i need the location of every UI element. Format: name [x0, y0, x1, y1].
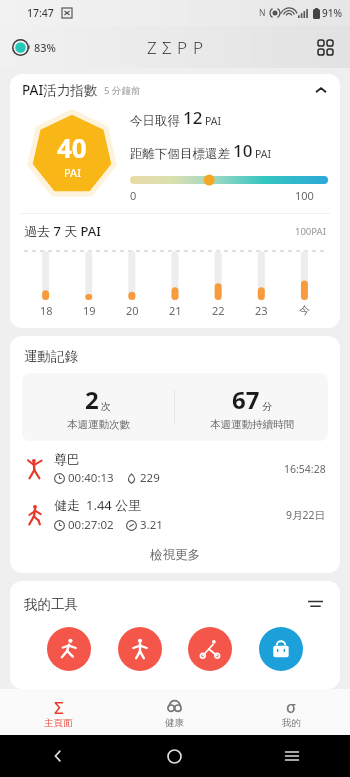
staticText: PAI [64, 165, 81, 180]
button[interactable]: Σ [0, 689, 116, 735]
staticText: 83% [34, 40, 56, 55]
staticText: 過去 7 天 PAI [24, 222, 101, 240]
staticText: 10 [233, 139, 253, 162]
button[interactable]: Apps [312, 34, 338, 60]
staticText: 17:47 [27, 6, 54, 20]
staticText: 健康 [165, 717, 184, 729]
staticText: 我的工具 [24, 596, 78, 613]
staticText: 本週運動次數 [67, 418, 130, 431]
staticText: 5 分鐘前 [104, 84, 141, 97]
staticText: σ [286, 696, 297, 715]
staticText: 21 [169, 303, 182, 318]
staticText: 健走 [54, 497, 80, 513]
staticText: 19 [83, 303, 96, 318]
staticText: Σ [54, 696, 64, 715]
button[interactable]: 檢視更多 [10, 543, 340, 567]
staticText: 我的 [282, 717, 301, 729]
button[interactable]: Edit tools [304, 593, 326, 615]
staticText: 分 [262, 400, 272, 413]
staticText: Σ [162, 36, 172, 59]
staticText: 12 [183, 106, 203, 129]
staticText: 今 [299, 303, 310, 317]
staticText: N [259, 7, 266, 19]
button[interactable]: Tool 2 [188, 627, 232, 671]
staticText: 1.44 公里 [86, 496, 142, 514]
button[interactable]: 2 [22, 373, 328, 441]
staticText: 運動記錄 [24, 348, 78, 365]
staticText: 尊巴 [54, 451, 80, 467]
staticText: 23 [255, 303, 268, 318]
staticText: 91% [322, 6, 342, 20]
staticText: 18 [40, 303, 53, 318]
button[interactable]: 健康 [116, 689, 233, 735]
staticText: 0 [130, 188, 137, 203]
other: Recents [284, 748, 300, 764]
staticText: 3.21 [140, 517, 163, 533]
staticText: 00:40:13 [68, 470, 114, 486]
staticText: 次 [101, 400, 111, 413]
button[interactable]: 尊巴 [10, 449, 340, 488]
other: Back [50, 748, 66, 764]
staticText: 主頁面 [44, 717, 73, 729]
staticText: 22 [212, 303, 225, 318]
staticText: Z [147, 36, 157, 59]
staticText: 40 [57, 130, 87, 165]
staticText: 今日取得 [130, 113, 180, 129]
staticText: 67 [232, 383, 260, 416]
button[interactable]: PAI活力指數 [10, 74, 340, 106]
staticText: 20 [126, 303, 139, 318]
staticText: 距離下個目標還差 [130, 146, 230, 162]
staticText: 100 [295, 188, 314, 203]
staticText: 229 [140, 470, 160, 486]
staticText: 100PAI [295, 225, 326, 238]
staticText: P [193, 36, 204, 59]
staticText: PAI [205, 114, 222, 128]
staticText: 2 [85, 383, 99, 416]
staticText: 9月22日 [286, 508, 326, 522]
staticText: PAI活力指數 [22, 81, 98, 99]
button[interactable]: Tool 1 [118, 627, 162, 671]
staticText: 檢視更多 [150, 547, 200, 563]
button[interactable]: 健走 [10, 494, 340, 535]
staticText: 本週運動持續時間 [210, 418, 294, 431]
button[interactable]: Tool 3 [259, 627, 303, 671]
staticText: P [177, 36, 188, 59]
other: Home [167, 749, 182, 764]
staticText: 00:27:02 [68, 517, 114, 533]
staticText: PAI [255, 147, 272, 161]
button[interactable]: σ [233, 689, 350, 735]
button[interactable]: 83% [12, 39, 56, 56]
button[interactable]: Tool 0 [47, 627, 91, 671]
staticText: 16:54:28 [284, 462, 326, 476]
